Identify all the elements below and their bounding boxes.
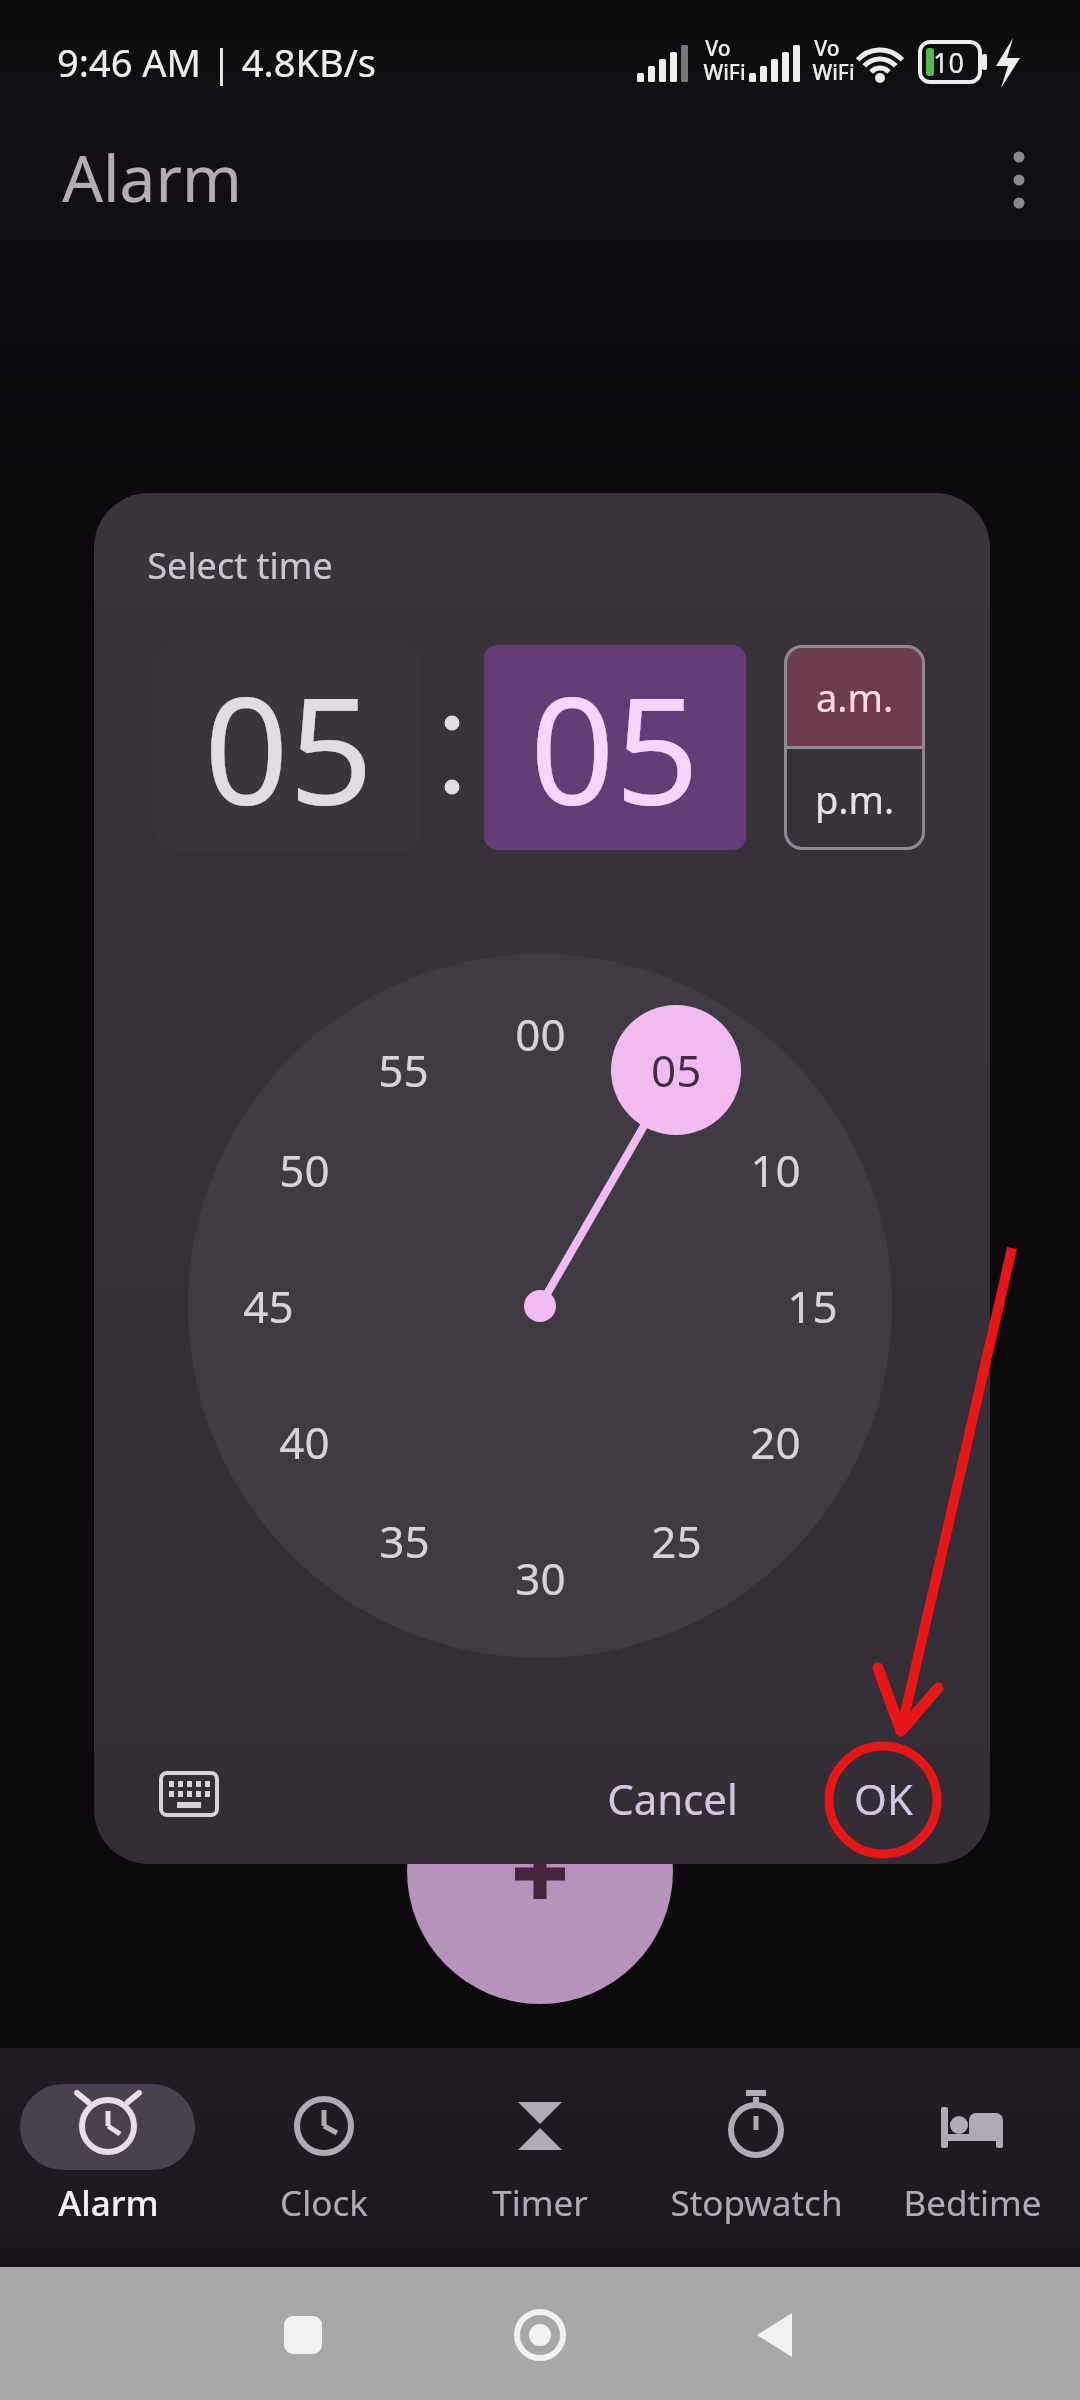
- staticText: 40: [279, 1412, 330, 1472]
- button[interactable]: [872, 2056, 1072, 2246]
- staticText: Alarm: [58, 2179, 159, 2227]
- staticText: Vo: [814, 34, 840, 63]
- button[interactable]: OK: [813, 1753, 953, 1843]
- staticText: 10: [933, 44, 964, 81]
- staticText: 20: [750, 1412, 801, 1472]
- staticText: 00: [515, 1004, 566, 1064]
- button[interactable]: 50: [249, 1135, 359, 1205]
- staticText: 35: [379, 1511, 430, 1571]
- button[interactable]: 05: [158, 645, 420, 850]
- staticText: 15: [787, 1276, 838, 1336]
- button[interactable]: 05: [484, 645, 746, 850]
- staticText: 25: [651, 1511, 702, 1571]
- staticText: 05: [204, 647, 374, 849]
- staticText: WiFi: [703, 58, 746, 87]
- button[interactable]: 30: [485, 1543, 595, 1613]
- button[interactable]: 20: [720, 1407, 830, 1477]
- staticText: 05: [530, 647, 700, 849]
- staticText: 30: [515, 1548, 566, 1608]
- staticText: Alarm: [62, 134, 242, 221]
- button[interactable]: 40: [249, 1407, 359, 1477]
- button[interactable]: [224, 2056, 424, 2246]
- button[interactable]: Cancel: [562, 1753, 782, 1843]
- button[interactable]: 45: [213, 1271, 323, 1341]
- staticText: Timer: [492, 2179, 588, 2227]
- staticText: WiFi: [812, 58, 855, 87]
- button[interactable]: [8, 2056, 208, 2246]
- staticText: 05: [651, 1040, 702, 1100]
- button[interactable]: 35: [349, 1506, 459, 1576]
- button[interactable]: 05: [611, 1005, 741, 1135]
- button[interactable]: [475, 2280, 605, 2390]
- button[interactable]: p.m.: [784, 748, 925, 850]
- staticText: Clock: [280, 2179, 368, 2227]
- staticText: OK: [854, 1770, 913, 1827]
- button[interactable]: [240, 2280, 370, 2390]
- staticText: 55: [378, 1040, 429, 1100]
- staticText: Bedtime: [903, 2179, 1042, 2227]
- button[interactable]: 55: [348, 1035, 458, 1105]
- staticText: a.m.: [816, 671, 894, 723]
- staticText: p.m.: [815, 773, 895, 825]
- button[interactable]: [656, 2056, 856, 2246]
- button[interactable]: 15: [757, 1271, 867, 1341]
- staticText: Select time: [147, 541, 333, 590]
- button[interactable]: [407, 1738, 673, 2004]
- button[interactable]: 00: [485, 999, 595, 1069]
- staticText: 9:46 AM | 4.8KB/s: [57, 36, 376, 88]
- button[interactable]: [1000, 140, 1040, 220]
- button[interactable]: 25: [621, 1506, 731, 1576]
- staticText: 10: [750, 1140, 801, 1200]
- staticText: Stopwatch: [670, 2179, 843, 2227]
- button[interactable]: [710, 2280, 840, 2390]
- button[interactable]: 10: [720, 1135, 830, 1205]
- staticText: 45: [243, 1276, 294, 1336]
- staticText: 50: [279, 1140, 330, 1200]
- button[interactable]: a.m.: [784, 645, 925, 748]
- button[interactable]: [440, 2056, 640, 2246]
- staticText: Vo: [705, 34, 731, 63]
- staticText: Cancel: [607, 1770, 738, 1827]
- button[interactable]: [155, 1766, 223, 1822]
